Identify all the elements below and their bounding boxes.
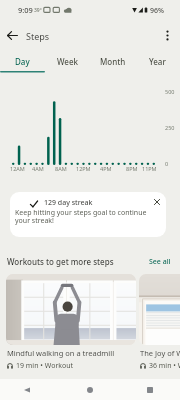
staticText: 11PM — [142, 165, 157, 172]
button[interactable]: More options — [156, 24, 178, 46]
staticText: 9:09 — [18, 5, 33, 15]
staticText: Week — [57, 56, 79, 67]
button[interactable]: Mindful walking on a treadmill — [6, 274, 136, 365]
button[interactable]: Back — [0, 379, 60, 400]
button[interactable]: Day — [0, 50, 45, 73]
staticText: 4PM — [100, 165, 112, 172]
button[interactable]: Back — [1, 24, 23, 46]
staticText: Steps — [26, 30, 50, 42]
staticText: 8AM — [55, 165, 67, 172]
staticText: 8PM — [126, 165, 138, 172]
button[interactable]: Month — [90, 50, 135, 73]
button[interactable]: The Joy of Walking — [139, 274, 180, 365]
staticText: 12AM — [10, 165, 25, 172]
staticText: 12PM — [76, 165, 91, 172]
staticText: 96% — [150, 6, 164, 16]
button[interactable]: See all — [144, 254, 176, 270]
staticText: See all — [149, 257, 171, 267]
button[interactable]: Dismiss — [150, 195, 163, 208]
staticText: Workouts to get more steps — [7, 256, 114, 267]
staticText: 19 min • Workout — [16, 361, 74, 371]
staticText: 4AM — [32, 165, 44, 172]
staticText: 39° — [34, 7, 42, 14]
staticText: 129 day streak — [44, 198, 93, 208]
staticText: 250 — [165, 124, 175, 131]
staticText: Mindful walking on a treadmill — [7, 348, 115, 358]
staticText: Keep hitting your steps goal to continue… — [15, 208, 161, 225]
staticText: 0 — [165, 160, 169, 167]
button[interactable]: 129 day streak — [10, 192, 166, 237]
button[interactable]: Home — [60, 379, 120, 400]
staticText: Day — [15, 56, 30, 67]
staticText: Year — [149, 56, 166, 67]
button[interactable]: Year — [135, 50, 180, 73]
staticText: 36 min • Workout — [149, 361, 180, 371]
staticText: Month — [100, 56, 126, 67]
staticText: 500 — [165, 88, 175, 95]
staticText: The Joy of Walking — [140, 348, 180, 358]
button[interactable]: Week — [45, 50, 90, 73]
button[interactable]: Recent apps — [120, 379, 180, 400]
